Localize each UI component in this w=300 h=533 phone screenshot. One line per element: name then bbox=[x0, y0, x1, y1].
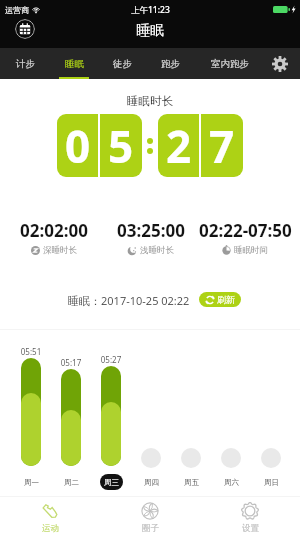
staticText: 圈子 bbox=[142, 523, 159, 533]
staticText: 睡眠 bbox=[65, 58, 84, 70]
staticText: 跑步 bbox=[161, 58, 180, 70]
button[interactable] bbox=[61, 369, 81, 466]
staticText: 运营商 bbox=[5, 5, 29, 15]
staticText: 5 bbox=[108, 116, 134, 176]
staticText: 05:17 bbox=[51, 357, 91, 368]
button[interactable]: 圈子 bbox=[100, 497, 200, 533]
staticText: 7 bbox=[209, 116, 235, 176]
button[interactable]: 跑步 bbox=[150, 48, 190, 79]
staticText: 深睡时长 bbox=[43, 245, 77, 256]
button[interactable] bbox=[101, 366, 121, 466]
button[interactable]: 刷新 bbox=[199, 292, 241, 307]
staticText: 设置 bbox=[242, 523, 259, 533]
staticText: 睡眠：2017-10-25 02:22 bbox=[68, 293, 190, 308]
staticText: 室内跑步 bbox=[211, 58, 249, 70]
staticText: 上午11:23 bbox=[131, 4, 170, 16]
button[interactable] bbox=[221, 448, 241, 468]
staticText: 睡眠时长 bbox=[0, 94, 300, 108]
staticText: 睡眠时间 bbox=[234, 245, 268, 256]
staticText: 02:02:00 bbox=[20, 219, 88, 242]
button[interactable]: 睡眠 bbox=[54, 48, 94, 79]
button[interactable]: 设置 bbox=[200, 497, 300, 533]
button[interactable]: 计步 bbox=[5, 48, 45, 79]
button[interactable] bbox=[261, 448, 281, 468]
staticText: 05:51 bbox=[11, 346, 51, 357]
staticText: 05:27 bbox=[91, 354, 131, 365]
button[interactable]: Calendar bbox=[15, 19, 35, 39]
staticText: 浅睡时长 bbox=[140, 245, 174, 256]
staticText: 运动 bbox=[42, 523, 59, 533]
staticText: 周五 bbox=[184, 478, 199, 487]
staticText: 周日 bbox=[264, 478, 279, 487]
button[interactable] bbox=[141, 448, 161, 468]
button[interactable]: Settings bbox=[262, 48, 298, 79]
staticText: 02:22-07:50 bbox=[199, 219, 292, 242]
staticText: 刷新 bbox=[217, 294, 235, 305]
button[interactable] bbox=[21, 358, 41, 466]
staticText: 03:25:00 bbox=[117, 219, 185, 242]
staticText: 2 bbox=[166, 116, 192, 176]
button[interactable]: 周五 bbox=[180, 474, 203, 490]
staticText: 周一 bbox=[24, 478, 39, 487]
staticText: 0 bbox=[65, 116, 91, 176]
button[interactable]: 周三 bbox=[100, 474, 123, 490]
staticText: 徒步 bbox=[113, 58, 132, 70]
staticText: 周三 bbox=[104, 478, 119, 487]
staticText: 周四 bbox=[144, 478, 159, 487]
button[interactable]: 周六 bbox=[220, 474, 243, 490]
button[interactable]: 周日 bbox=[260, 474, 283, 490]
button[interactable]: 周一 bbox=[20, 474, 43, 490]
button[interactable]: 周四 bbox=[140, 474, 163, 490]
button[interactable]: 徒步 bbox=[102, 48, 142, 79]
button[interactable]: 运动 bbox=[0, 497, 100, 533]
button[interactable] bbox=[181, 448, 201, 468]
button[interactable]: 室内跑步 bbox=[205, 48, 255, 79]
button[interactable]: 周二 bbox=[60, 474, 83, 490]
staticText: 周六 bbox=[224, 478, 239, 487]
staticText: 睡眠 bbox=[136, 22, 164, 40]
staticText: 周二 bbox=[64, 478, 79, 487]
staticText: 计步 bbox=[16, 58, 35, 70]
